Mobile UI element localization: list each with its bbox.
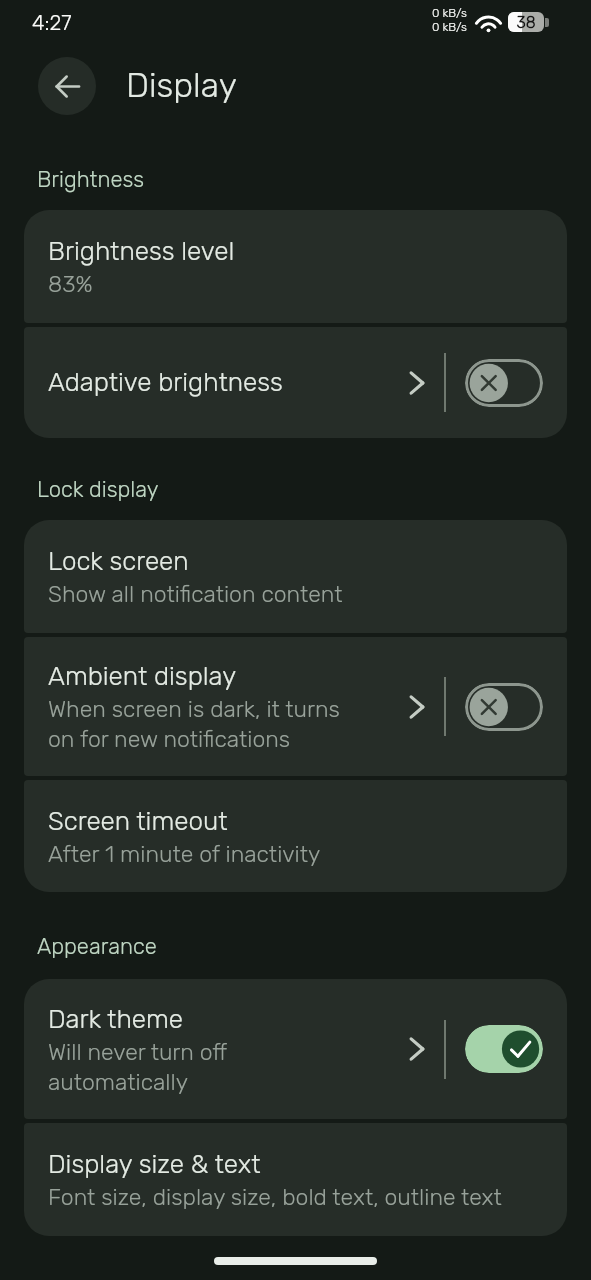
button[interactable]: Lock screen (24, 520, 567, 633)
staticText: Adaptive brightness (48, 367, 283, 398)
button[interactable]: Back (38, 57, 96, 115)
button[interactable]: Display size & text (24, 1123, 567, 1236)
staticText: Brightness level (48, 236, 235, 267)
staticText: Display (126, 65, 237, 105)
staticText: Dark theme (48, 1004, 183, 1035)
staticText: 4:27 (32, 10, 72, 35)
staticText: 38 (508, 13, 544, 32)
staticText: Font size, display size, bold text, outl… (48, 1183, 502, 1210)
staticText: After 1 minute of inactivity (48, 840, 321, 867)
staticText: Lock screen (48, 546, 189, 577)
staticText: 0 kB/s (432, 6, 467, 20)
button[interactable]: Dark theme (24, 979, 567, 1119)
button[interactable]: Ambient display (24, 637, 567, 776)
staticText: Ambient display (48, 661, 237, 692)
staticText: Screen timeout (48, 806, 228, 837)
button[interactable]: Toggle off (465, 359, 543, 407)
staticText: 83% (48, 270, 93, 297)
staticText: 0 kB/s (432, 20, 467, 34)
button[interactable]: Screen timeout (24, 780, 567, 892)
button[interactable]: Brightness level (24, 210, 567, 323)
staticText: Brightness (37, 166, 145, 192)
staticText: Lock display (37, 476, 159, 502)
staticText: Appearance (37, 933, 157, 959)
staticText: Display size & text (48, 1149, 261, 1180)
staticText: Show all notification content (48, 580, 343, 607)
button[interactable]: Toggle off (465, 683, 543, 731)
staticText: Will never turn off automatically (48, 1038, 228, 1095)
button[interactable]: Toggle on (465, 1025, 543, 1073)
staticText: When screen is dark, it turns on for new… (48, 695, 340, 752)
button[interactable]: Adaptive brightness (24, 327, 567, 438)
